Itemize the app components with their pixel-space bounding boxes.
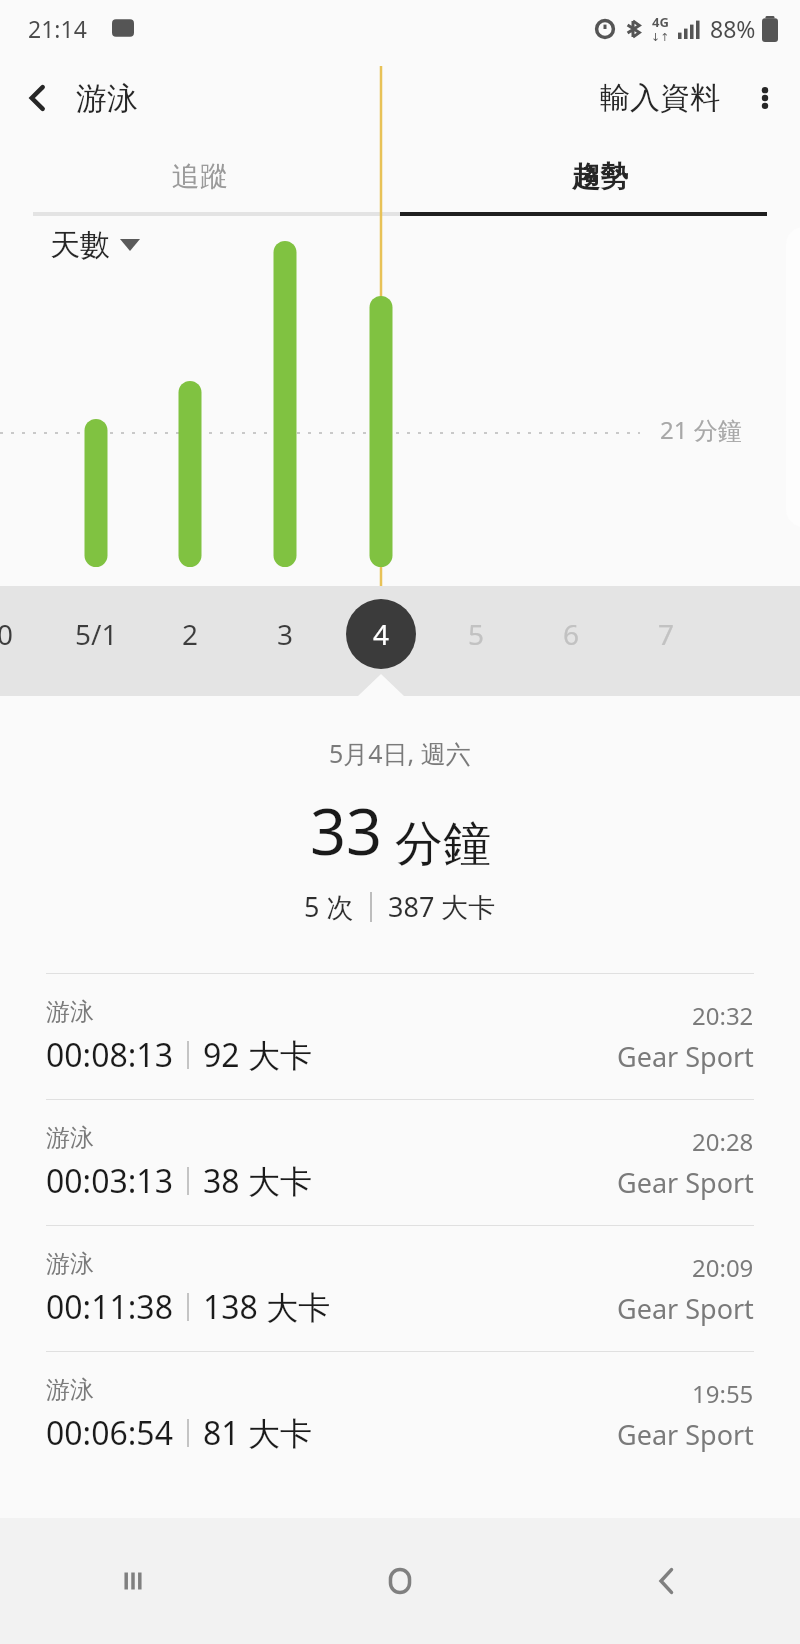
button[interactable]: 4 (336, 596, 426, 671)
button[interactable]: 追蹤 (0, 140, 400, 212)
staticText: 2 (182, 615, 199, 653)
staticText: 20:32 (692, 999, 754, 1032)
button[interactable]: 游泳 (0, 974, 800, 1099)
staticText: 4G (652, 13, 669, 31)
staticText: 38 大卡 (203, 1159, 312, 1203)
staticText: 5 (468, 615, 485, 653)
staticText: 7 (658, 615, 675, 653)
staticText: 5/1 (75, 615, 118, 653)
staticText: 387 大卡 (388, 888, 496, 925)
staticText: 追蹤 (172, 159, 228, 194)
button[interactable]: 5/1 (51, 596, 141, 671)
button[interactable]: 輸入資料 (590, 71, 730, 125)
staticText: 20:09 (692, 1251, 754, 1284)
staticText: 33 (310, 788, 383, 874)
staticText: Gear Sport (617, 1038, 754, 1075)
button[interactable]: 游泳 (0, 1100, 800, 1225)
button[interactable]: 7 (621, 596, 711, 671)
staticText: 88% (710, 13, 756, 44)
button[interactable]: 3 (240, 596, 330, 671)
staticText: 5 次 (304, 888, 354, 925)
button[interactable]: 0 (0, 596, 50, 671)
button[interactable]: More options (730, 63, 800, 133)
staticText: 天數 (50, 226, 110, 264)
staticText: 3 (277, 615, 294, 653)
staticText: 21 分鐘 (660, 413, 742, 446)
staticText: 游泳 (46, 997, 94, 1027)
staticText: 分鐘 (395, 814, 491, 874)
button[interactable]: Back (533, 1518, 800, 1644)
button[interactable]: Recent apps (0, 1518, 266, 1644)
button[interactable]: Back (0, 60, 76, 136)
staticText: 5月4日, 週六 (329, 736, 471, 770)
button[interactable]: 6 (526, 596, 616, 671)
staticText: 00:06:54 (46, 1411, 173, 1455)
staticText: 輸入資料 (600, 79, 720, 117)
button[interactable]: 趨勢 (400, 140, 800, 212)
staticText: 21:14 (28, 13, 87, 44)
staticText: 92 大卡 (203, 1033, 312, 1077)
staticText: Gear Sport (617, 1290, 754, 1327)
staticText: 19:55 (692, 1377, 754, 1410)
staticText: Gear Sport (617, 1416, 754, 1453)
staticText: 游泳 (76, 79, 138, 118)
staticText: 游泳 (46, 1249, 94, 1279)
staticText: 0 (0, 615, 14, 653)
staticText: 趨勢 (572, 159, 628, 194)
staticText: 6 (563, 615, 580, 653)
button[interactable]: 5 (431, 596, 521, 671)
staticText: ↓↑ (651, 31, 670, 44)
staticText: 游泳 (46, 1123, 94, 1153)
staticText: 4 (373, 615, 390, 653)
staticText: 20:28 (692, 1125, 754, 1158)
staticText: 00:08:13 (46, 1033, 173, 1077)
staticText: Gear Sport (617, 1164, 754, 1201)
staticText: 游泳 (46, 1375, 94, 1405)
button[interactable]: Home (266, 1518, 533, 1644)
button[interactable]: 游泳 (0, 1226, 800, 1351)
button[interactable]: 天數 (50, 226, 140, 264)
staticText: 138 大卡 (203, 1285, 331, 1329)
staticText: 00:03:13 (46, 1159, 173, 1203)
staticText: 00:11:38 (46, 1285, 173, 1329)
button[interactable]: 2 (145, 596, 235, 671)
staticText: 81 大卡 (203, 1411, 312, 1455)
button[interactable]: 游泳 (0, 1352, 800, 1477)
